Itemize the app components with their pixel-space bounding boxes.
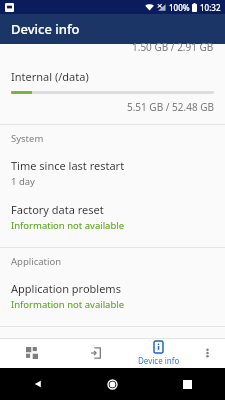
button[interactable]: Device info [127,338,190,368]
button[interactable]: Application problems [0,274,225,318]
staticText: 1 day [11,175,35,188]
staticText: Application [11,255,62,268]
button[interactable]: More options [190,338,225,368]
button[interactable]: Home [75,368,150,400]
button[interactable]: Factory data reset [0,195,225,239]
button[interactable]: Time since last restart [0,151,225,195]
staticText: Internal (/data) [11,69,89,84]
staticText: Application problems [11,281,121,296]
staticText: Time since last restart [11,158,125,173]
staticText: 100% [169,2,190,13]
staticText: 1.50 GB / 2.91 GB [132,40,214,51]
staticText: 5.51 GB / 52.48 GB [11,100,214,114]
staticText: Information not available [11,298,125,311]
staticText: Device info [138,355,180,366]
button[interactable]: Internal (/data) [0,69,225,114]
button[interactable]: Dashboard [0,338,64,368]
staticText: Device info [11,20,80,38]
button[interactable]: Recent apps [150,368,225,400]
staticText: Information not available [11,219,125,232]
staticText: System [11,132,44,145]
staticText: Factory data reset [11,202,104,217]
staticText: 10:32 [200,2,221,13]
button[interactable]: Back [0,368,75,400]
button[interactable]: Device test [64,338,127,368]
